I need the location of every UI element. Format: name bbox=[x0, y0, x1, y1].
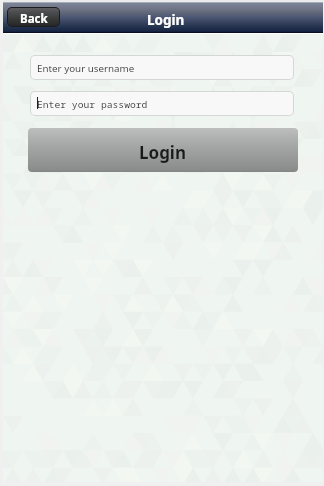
button[interactable]: Login bbox=[28, 128, 298, 172]
staticText: Back bbox=[20, 11, 48, 26]
staticText: Enter your password bbox=[37, 98, 148, 111]
staticText: Login bbox=[139, 141, 187, 164]
staticText: Login bbox=[147, 11, 185, 29]
button[interactable]: Back bbox=[8, 8, 59, 26]
button[interactable]: Enter your username bbox=[31, 56, 293, 79]
button[interactable]: Enter your password bbox=[31, 92, 293, 115]
staticText: Enter your username bbox=[37, 62, 135, 75]
